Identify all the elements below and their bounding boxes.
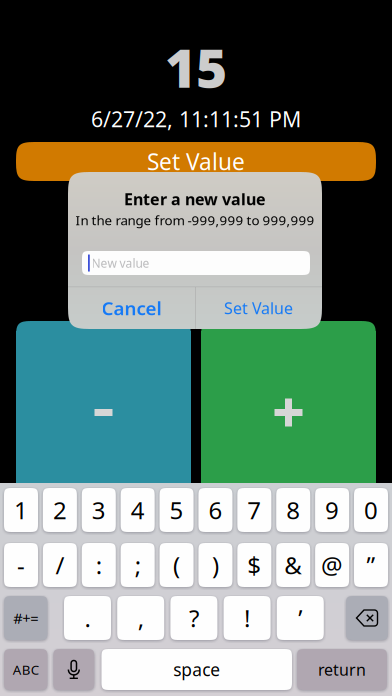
staticText: ” [366, 549, 375, 581]
button[interactable]: ( [160, 543, 194, 587]
button[interactable]: 4 [121, 488, 155, 532]
button[interactable]: return [297, 649, 387, 690]
button[interactable]: 5 [160, 488, 194, 532]
staticText: 2 [53, 494, 67, 526]
staticText: ( [173, 549, 180, 581]
button[interactable]: Cancel [68, 287, 195, 329]
button[interactable]: ’ [277, 596, 324, 640]
button[interactable]: 1 [4, 488, 38, 532]
staticText: 7 [247, 494, 261, 526]
staticText: : [96, 549, 102, 581]
staticText: / [55, 549, 64, 581]
button[interactable]: ! [224, 596, 271, 640]
button[interactable]: 0 [354, 488, 388, 532]
staticText: ’ [298, 602, 302, 634]
staticText: $ [247, 549, 261, 581]
staticText: Cancel [101, 296, 161, 320]
staticText: 3 [92, 494, 106, 526]
button[interactable]: ? [170, 596, 217, 640]
staticText: return [318, 659, 366, 680]
button[interactable]: $ [237, 543, 271, 587]
staticText: 1 [14, 494, 28, 526]
button[interactable]: Set Value [195, 287, 322, 329]
staticText: #+= [13, 608, 38, 628]
button[interactable]: , [117, 596, 164, 640]
staticText: 9 [325, 494, 339, 526]
staticText: New value [91, 255, 149, 271]
button[interactable]: - [4, 543, 38, 587]
staticText: 0 [364, 494, 378, 526]
button[interactable]: / [43, 543, 77, 587]
staticText: 6/27/22, 11:11:51 PM [91, 105, 301, 133]
button[interactable]: : [82, 543, 116, 587]
staticText: 8 [286, 494, 300, 526]
button[interactable]: @ [315, 543, 349, 587]
button[interactable]: & [276, 543, 310, 587]
button[interactable]: 6 [198, 488, 232, 532]
staticText: Enter a new value [124, 188, 266, 210]
button[interactable]: ABC [4, 649, 47, 690]
button[interactable]: Decrement [16, 321, 191, 483]
button[interactable]: 9 [315, 488, 349, 532]
staticText: ! [244, 602, 250, 634]
button[interactable]: Delete [346, 596, 388, 640]
staticText: Set Value [147, 146, 245, 176]
staticText: Set Value [224, 297, 293, 319]
button[interactable]: #+= [4, 596, 47, 640]
button[interactable]: 2 [43, 488, 77, 532]
staticText: space [173, 658, 220, 681]
staticText: - [17, 549, 25, 581]
button[interactable]: 7 [237, 488, 271, 532]
button[interactable]: Set Value [16, 142, 376, 181]
staticText: ? [189, 602, 199, 634]
staticText: & [284, 549, 302, 581]
staticText: ; [135, 549, 141, 581]
staticText: ABC [13, 661, 39, 678]
staticText: @ [321, 549, 343, 581]
button[interactable]: 8 [276, 488, 310, 532]
staticText: , [138, 602, 144, 634]
staticText: 6 [208, 494, 222, 526]
button[interactable]: Increment [201, 321, 376, 483]
staticText: ) [212, 549, 219, 581]
staticText: In the range from -999,999 to 999,999 [75, 211, 314, 229]
button[interactable]: ) [198, 543, 232, 587]
button[interactable]: 3 [82, 488, 116, 532]
button[interactable]: space [101, 649, 292, 690]
staticText: 15 [165, 32, 227, 102]
button[interactable]: ” [354, 543, 388, 587]
button[interactable]: Dictate [53, 649, 94, 690]
button[interactable]: ; [121, 543, 155, 587]
button[interactable]: . [64, 596, 111, 640]
staticText: 4 [131, 494, 145, 526]
staticText: 5 [170, 494, 184, 526]
staticText: . [84, 602, 90, 634]
